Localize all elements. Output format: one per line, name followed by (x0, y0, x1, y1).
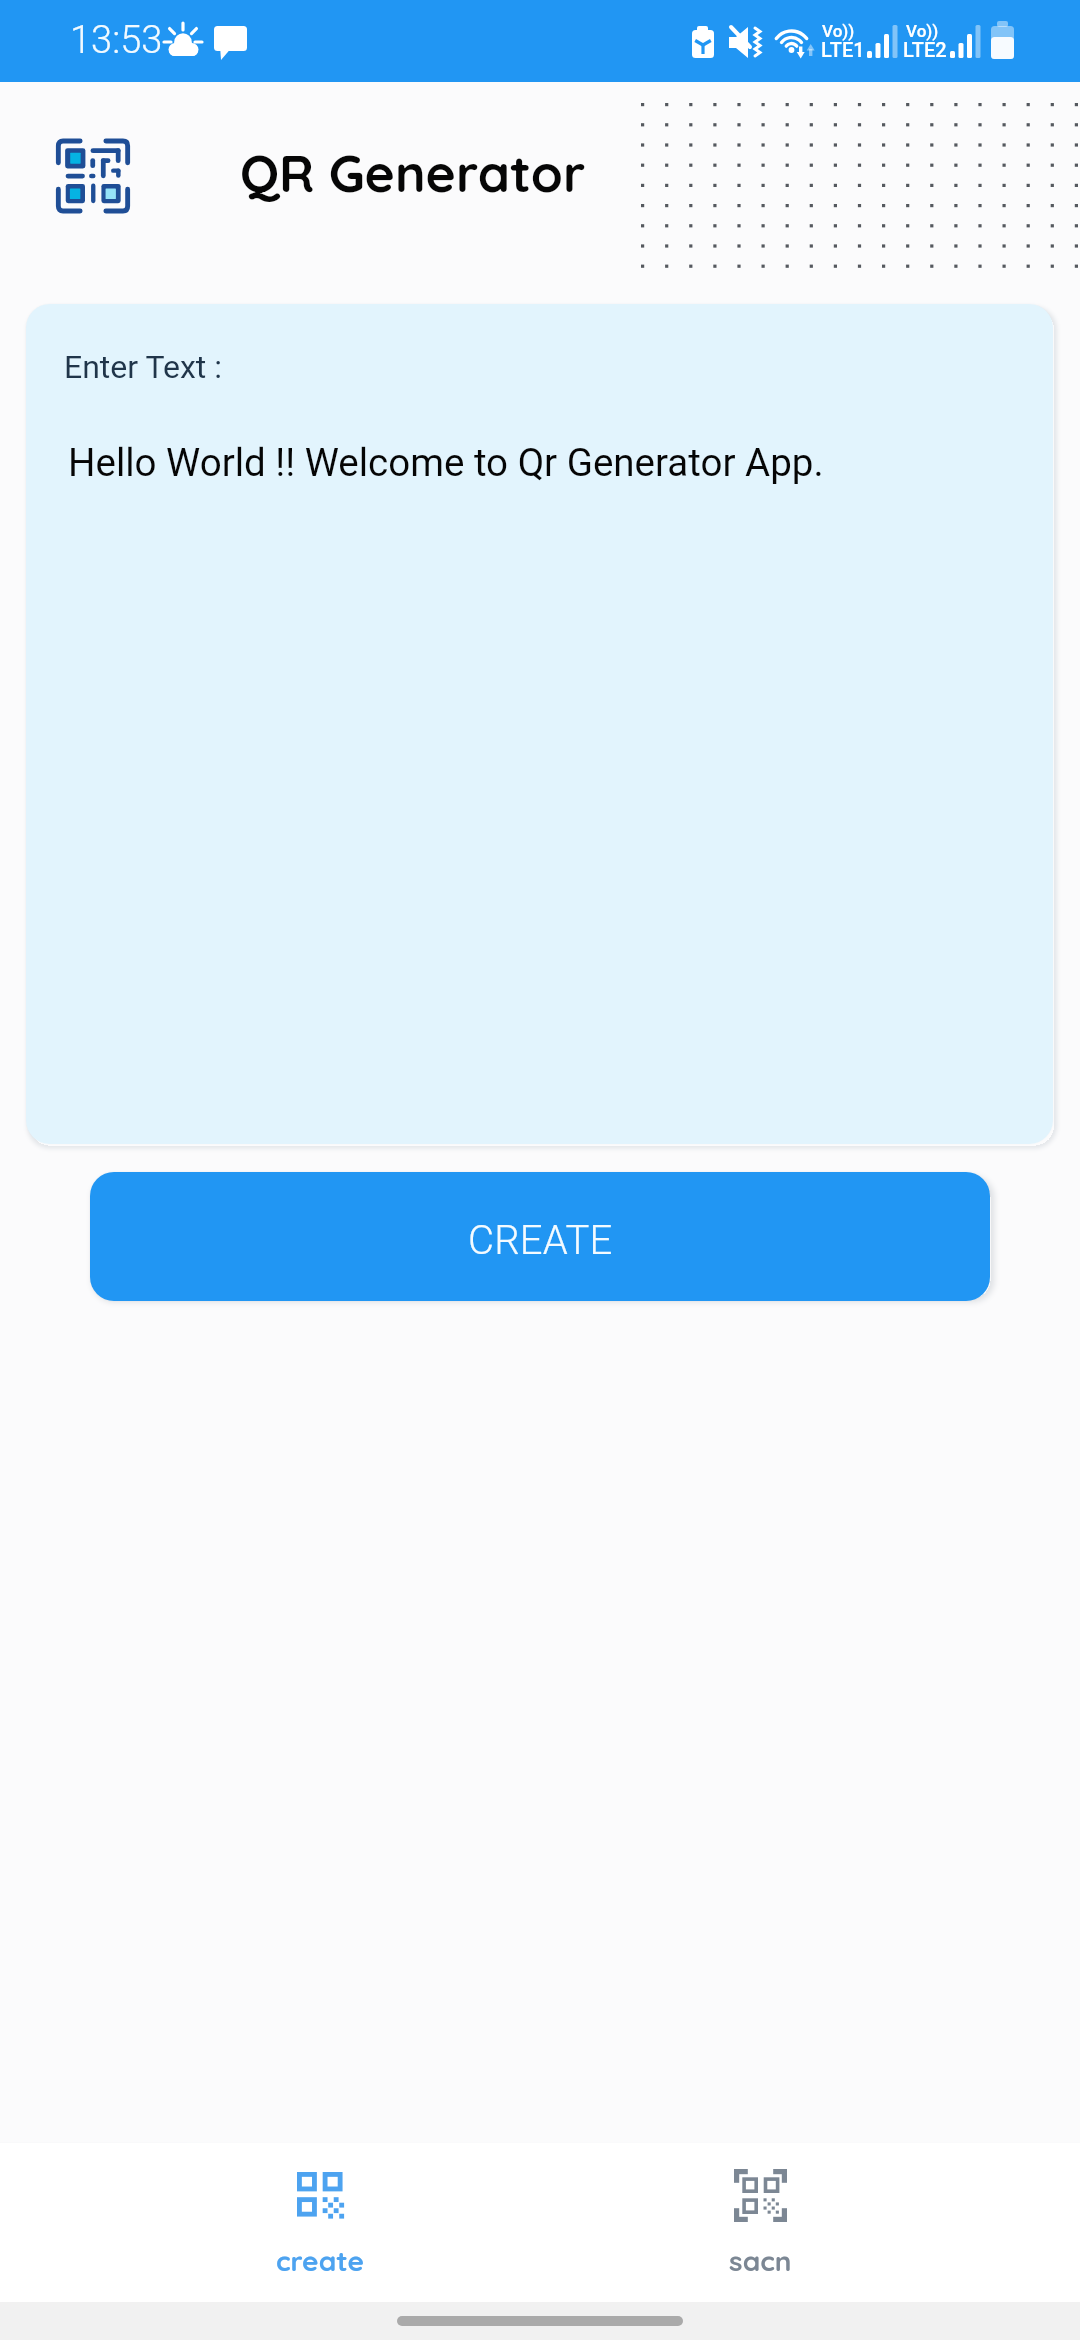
button[interactable]: CREATE (90, 1172, 990, 1301)
staticText: CREATE (468, 1217, 613, 1264)
button[interactable]: Enter Text : (26, 304, 1053, 1144)
staticText: Enter Text : (64, 348, 222, 386)
staticText: Vo)) (906, 21, 939, 41)
staticText: LTE2 (903, 38, 947, 61)
staticText: Vo)) (822, 21, 855, 41)
other: QR code (55, 138, 131, 214)
staticText: LTE1 (821, 38, 865, 61)
staticText: Hello World !! Welcome to Qr Generator A… (68, 440, 824, 485)
staticText: 13:53 (70, 18, 163, 63)
staticText: QR Generator (240, 140, 586, 204)
staticText: sacn (729, 2243, 792, 2278)
button[interactable]: sacn (540, 2143, 980, 2302)
button[interactable]: create (100, 2143, 540, 2302)
staticText: create (276, 2243, 365, 2278)
